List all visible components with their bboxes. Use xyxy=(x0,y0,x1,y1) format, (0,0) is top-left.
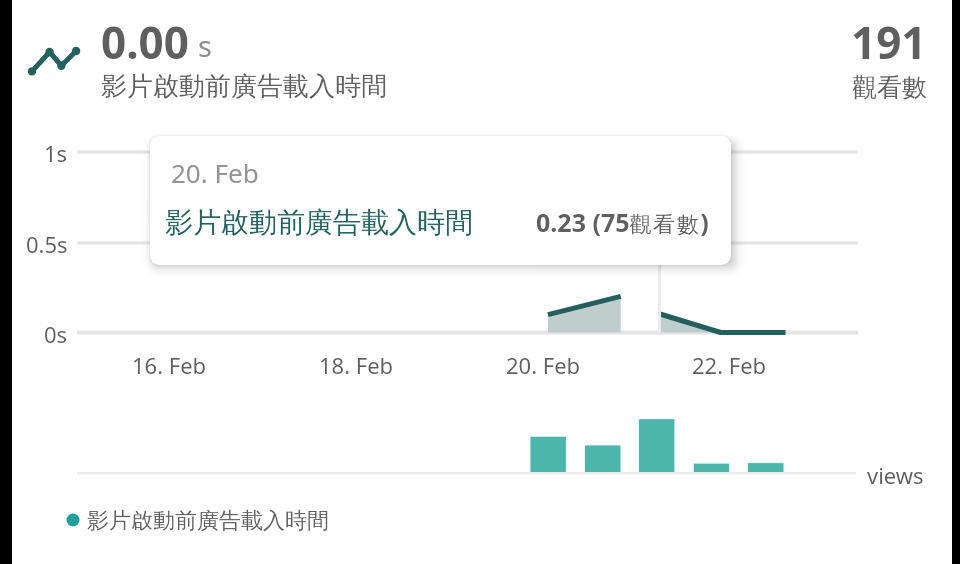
button[interactable]: 影片啟動前廣告載入時間 xyxy=(60,507,329,535)
staticText: 18. Feb xyxy=(319,350,394,380)
button[interactable]: Ad load time chart, 16 Feb to 22 Feb xyxy=(20,120,920,530)
staticText: 影片啟動前廣告載入時間 xyxy=(101,70,387,103)
button[interactable]: 20. Feb xyxy=(150,136,731,265)
staticText: 16. Feb xyxy=(132,350,207,380)
staticText: s xyxy=(198,26,212,65)
button[interactable]: 0.00 xyxy=(101,12,387,105)
staticText: 1s xyxy=(44,138,68,166)
staticText: 0s xyxy=(44,319,68,347)
staticText: 20. Feb xyxy=(171,155,259,190)
staticText: 影片啟動前廣告載入時間 xyxy=(165,205,473,240)
staticText: 觀看數 xyxy=(852,72,927,103)
staticText: 0.5s xyxy=(26,229,68,257)
staticText: 影片啟動前廣告載入時間 xyxy=(87,507,329,535)
button[interactable]: 191 xyxy=(660,12,927,103)
staticText: 191 xyxy=(851,12,927,72)
staticText: 20. Feb xyxy=(506,350,581,380)
staticText: 22. Feb xyxy=(692,350,767,380)
button[interactable]: Metric trend xyxy=(22,40,86,84)
staticText: 0.00 xyxy=(101,12,189,72)
staticText: 0.23 (75觀看數) xyxy=(536,205,709,239)
staticText: views xyxy=(867,460,924,490)
